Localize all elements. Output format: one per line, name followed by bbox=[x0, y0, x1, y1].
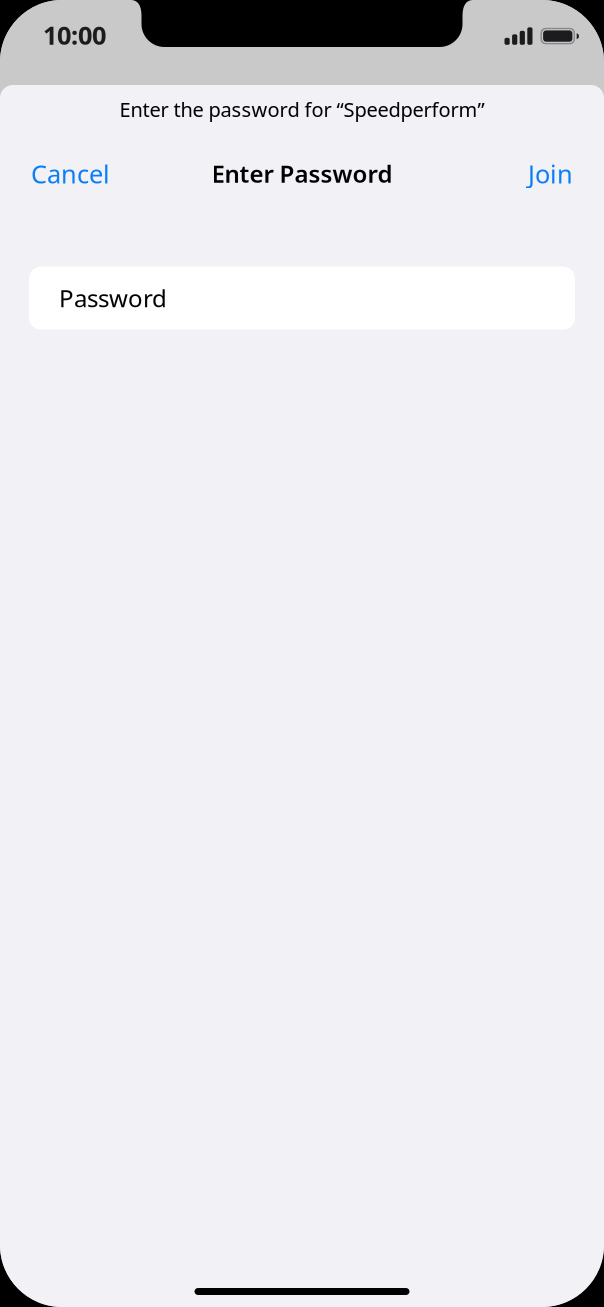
staticText: Cancel bbox=[31, 157, 110, 190]
staticText: 10:00 bbox=[43, 18, 106, 52]
button[interactable]: Password bbox=[29, 267, 575, 330]
staticText: Enter the password for “Speedperform” bbox=[119, 96, 484, 123]
button[interactable]: Join bbox=[517, 152, 573, 196]
button[interactable]: Cancel bbox=[31, 152, 117, 196]
staticText: Password bbox=[59, 282, 167, 314]
staticText: Join bbox=[528, 157, 573, 190]
staticText: Enter Password bbox=[211, 158, 392, 189]
